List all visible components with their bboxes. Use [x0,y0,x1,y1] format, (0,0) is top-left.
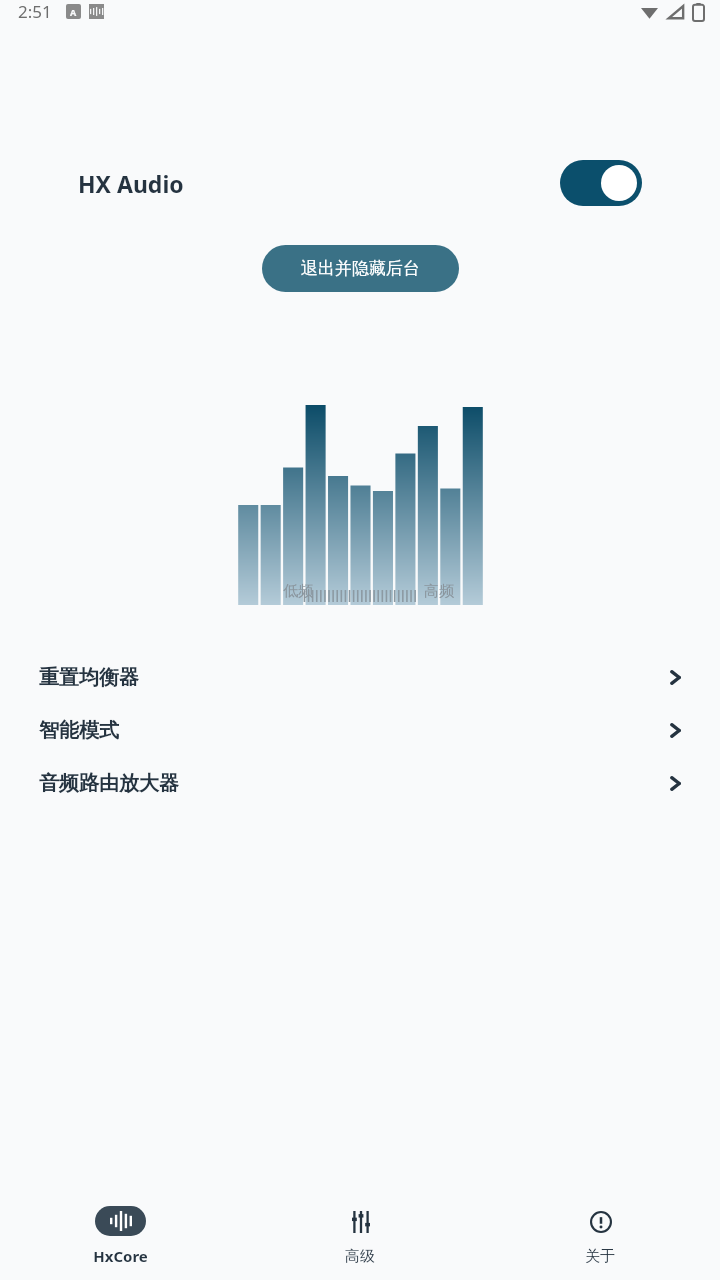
button[interactable]: 退出并隐藏后台 [262,245,459,292]
staticText: HX Audio [78,168,184,199]
staticText: 重置均衡器 [39,665,139,690]
button[interactable]: 高级 [240,1192,480,1280]
button[interactable]: 智能模式 [0,704,720,757]
button[interactable]: 关于 [480,1192,720,1280]
button[interactable]: HX Audio toggle [560,160,642,206]
staticText: 关于 [585,1247,615,1266]
staticText: 音频路由放大器 [39,771,179,796]
button[interactable]: HxCore [0,1192,240,1280]
button[interactable]: Equalizer bands [237,405,484,605]
staticText: 高级 [345,1247,375,1266]
staticText: 低频 [283,582,315,601]
staticText: HxCore [93,1246,148,1266]
staticText: 2:51 [18,0,52,23]
button[interactable]: 音频路由放大器 [0,757,720,810]
button[interactable]: 重置均衡器 [0,651,720,704]
staticText: 退出并隐藏后台 [301,258,420,279]
staticText: A [70,6,77,18]
staticText: 高频 [424,582,456,601]
staticText: 智能模式 [39,718,119,743]
